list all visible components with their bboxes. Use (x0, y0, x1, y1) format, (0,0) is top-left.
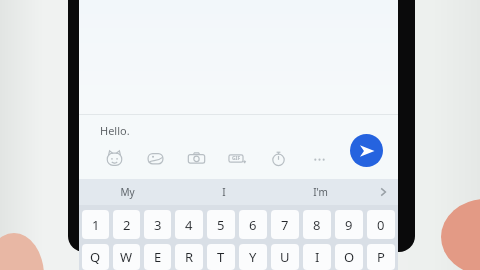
staticText: I (222, 185, 226, 199)
button[interactable]: Camera (176, 145, 217, 171)
button[interactable]: U (271, 244, 299, 270)
button[interactable]: Send (350, 134, 383, 167)
staticText: R (185, 248, 194, 266)
button[interactable]: O (335, 244, 363, 270)
staticText: I (315, 248, 320, 266)
button[interactable]: More suggestions (368, 179, 398, 205)
button[interactable]: E (144, 244, 171, 270)
button[interactable]: I (303, 244, 331, 270)
button[interactable]: My (79, 179, 176, 205)
button[interactable]: I (176, 179, 272, 205)
button[interactable]: I'm (272, 179, 368, 205)
button[interactable]: 9 (335, 210, 363, 239)
button[interactable]: 1 (82, 210, 109, 239)
staticText: 3 (154, 216, 162, 234)
button[interactable]: Q (82, 244, 109, 270)
button[interactable]: 4 (175, 210, 203, 239)
staticText: 7 (281, 216, 289, 234)
staticText: 8 (313, 216, 321, 234)
staticText: My (120, 185, 135, 199)
staticText: 0 (377, 216, 385, 234)
staticText: 1 (92, 216, 100, 234)
staticText: 9 (345, 216, 353, 234)
button[interactable]: W (113, 244, 140, 270)
button[interactable]: 6 (239, 210, 267, 239)
button[interactable]: 8 (303, 210, 331, 239)
button[interactable]: 2 (113, 210, 140, 239)
staticText: Y (249, 248, 257, 266)
staticText: 6 (249, 216, 257, 234)
staticText: W (120, 248, 133, 266)
staticText: T (217, 248, 225, 266)
staticText: Hello. (100, 123, 130, 138)
button[interactable]: 0 (367, 210, 395, 239)
staticText: P (377, 248, 385, 266)
staticText: U (280, 248, 290, 266)
staticText: 4 (185, 216, 193, 234)
button[interactable]: T (207, 244, 235, 270)
button[interactable]: P (367, 244, 395, 270)
button[interactable]: Stickers (135, 145, 176, 171)
button[interactable]: Message timer (258, 145, 299, 171)
staticText: I'm (313, 185, 328, 199)
button[interactable]: 7 (271, 210, 299, 239)
staticText: 2 (123, 216, 131, 234)
button[interactable]: Y (239, 244, 267, 270)
staticText: Q (90, 248, 101, 266)
button[interactable]: More options (299, 145, 340, 171)
staticText: GIF (232, 155, 241, 162)
button[interactable]: 3 (144, 210, 171, 239)
staticText: O (344, 248, 355, 266)
button[interactable]: AR Emoji (94, 145, 135, 171)
staticText: 5 (217, 216, 225, 234)
staticText: E (154, 248, 162, 266)
button[interactable]: R (175, 244, 203, 270)
button[interactable]: Add GIF (217, 145, 258, 171)
button[interactable]: 5 (207, 210, 235, 239)
